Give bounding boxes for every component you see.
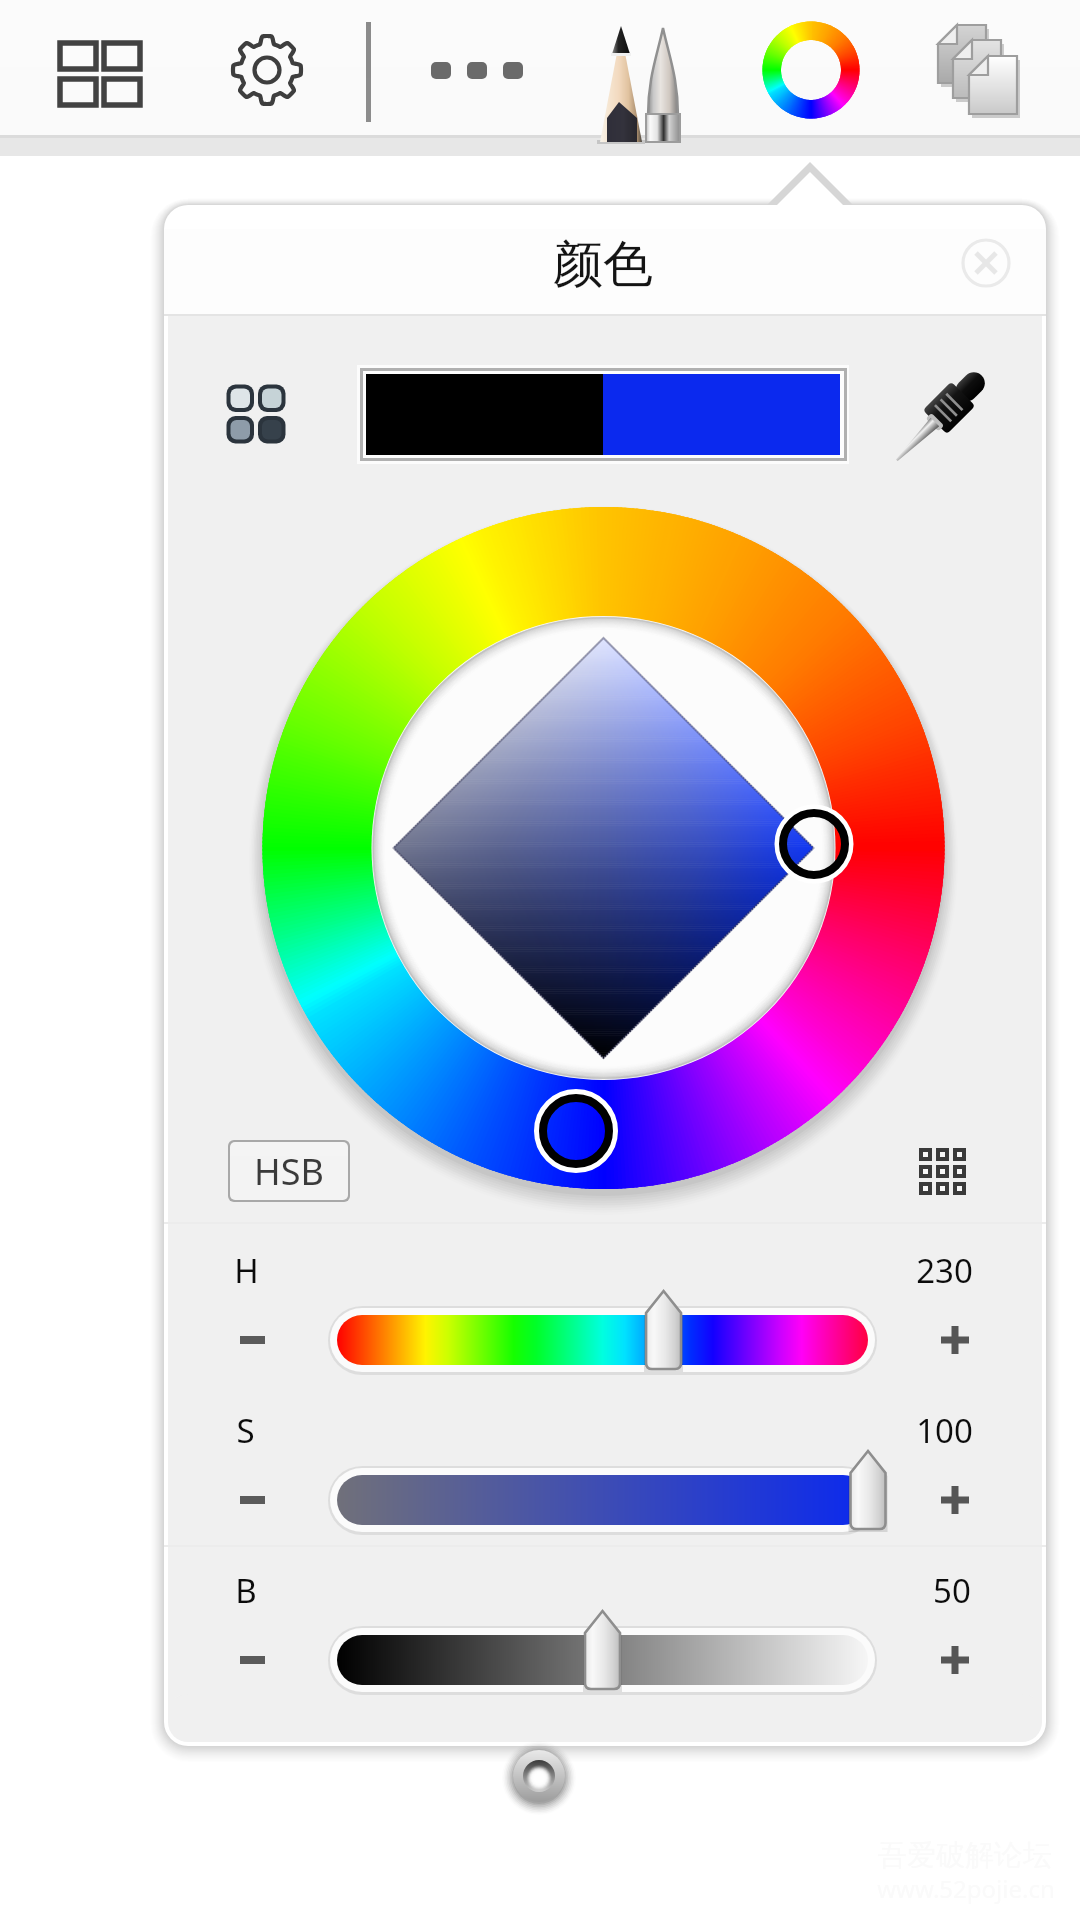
button[interactable]: Increase saturation	[925, 1470, 987, 1530]
staticText: HSB	[254, 1147, 324, 1196]
button[interactable]: Current color	[358, 366, 846, 462]
button[interactable]: Decrease brightness	[225, 1632, 285, 1688]
button[interactable]: More options	[412, 40, 510, 100]
button[interactable]: Gallery	[40, 30, 150, 112]
button[interactable]: Swatches	[912, 1140, 976, 1204]
button[interactable]: Settings	[225, 28, 312, 115]
button[interactable]: Saturation slider	[337, 1475, 868, 1525]
button[interactable]: Brush	[594, 20, 690, 122]
staticText: 100	[916, 1408, 973, 1453]
button[interactable]: Layers	[928, 20, 1032, 122]
staticText: B	[235, 1568, 257, 1613]
button[interactable]: HSB	[228, 1140, 350, 1202]
staticText: 230	[916, 1248, 973, 1293]
staticText: 50	[933, 1568, 971, 1613]
button[interactable]: Increase brightness	[925, 1630, 987, 1690]
button[interactable]: Colour wheel	[263, 508, 944, 1188]
staticText: 颜色	[553, 233, 653, 296]
button[interactable]: Eyedropper	[898, 368, 990, 460]
staticText: S	[236, 1408, 255, 1453]
button[interactable]: Brightness slider	[337, 1635, 868, 1685]
button[interactable]: Close	[958, 234, 1014, 290]
button[interactable]: Home	[508, 1758, 572, 1822]
button[interactable]: Palette	[224, 378, 290, 450]
button[interactable]: Decrease hue	[225, 1312, 285, 1368]
button[interactable]: Color	[757, 18, 864, 124]
button[interactable]: Hue slider	[337, 1315, 868, 1365]
button[interactable]: Decrease saturation	[225, 1472, 285, 1528]
staticText: H	[234, 1248, 259, 1293]
button[interactable]: Increase hue	[925, 1310, 987, 1370]
